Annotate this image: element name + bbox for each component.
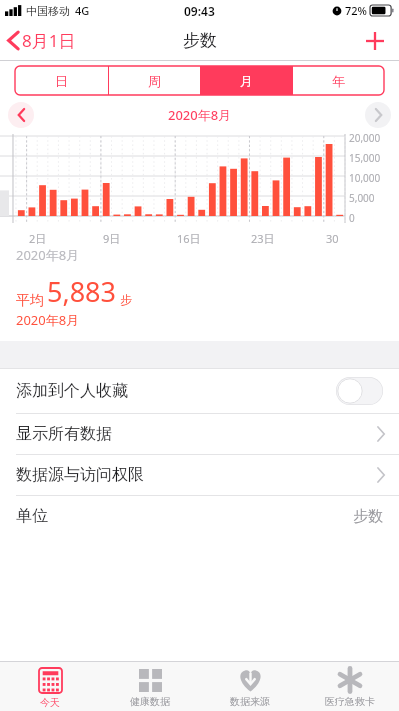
button[interactable]: 月 (200, 66, 292, 95)
staticText: 步数 (183, 30, 217, 51)
button[interactable]: 显示所有数据 (0, 414, 399, 454)
staticText: 平均 (16, 292, 44, 310)
staticText: 2020年8月 (16, 311, 80, 329)
staticText: 数据来源 (230, 695, 270, 708)
staticText: 显示所有数据 (16, 424, 112, 444)
button[interactable]: Add (351, 23, 399, 59)
staticText: 数据源与访问权限 (16, 465, 144, 485)
button[interactable]: 年 (292, 66, 384, 95)
button[interactable]: Next month (365, 102, 391, 128)
staticText: 2020年8月 (16, 246, 80, 264)
staticText: 30 (326, 231, 339, 246)
staticText: 单位 (16, 506, 48, 526)
staticText: 0 (349, 211, 397, 225)
staticText: 添加到个人收藏 (16, 381, 128, 401)
staticText: 20,000 (349, 131, 397, 145)
staticText: 2020年8月 (168, 106, 232, 124)
button[interactable]: 数据源与访问权限 (0, 455, 399, 495)
staticText: 日 (55, 73, 68, 89)
button[interactable]: Previous month (8, 102, 34, 128)
staticText: 今天 (40, 696, 60, 709)
staticText: 月 (240, 73, 253, 89)
staticText: 4G (75, 3, 90, 18)
staticText: 健康数据 (130, 695, 170, 708)
button[interactable]: 日 (15, 66, 108, 95)
button[interactable]: 周 (108, 66, 200, 95)
staticText: 72% (345, 3, 367, 18)
staticText: 10,000 (349, 171, 397, 185)
button[interactable]: 今天 (0, 662, 100, 711)
staticText: 16日 (177, 231, 201, 246)
staticText: 步 (120, 292, 132, 307)
button[interactable]: 单位 (0, 496, 399, 536)
staticText: 9日 (103, 231, 121, 246)
button[interactable]: 8月1日 (0, 25, 84, 56)
button[interactable]: 医疗急救卡 (300, 662, 399, 711)
staticText: 8月1日 (22, 29, 76, 52)
staticText: 中国移动 (26, 4, 70, 18)
button[interactable]: 添加到个人收藏 (0, 369, 399, 413)
staticText: 步数 (353, 507, 383, 526)
button[interactable]: 健康数据 (100, 662, 200, 711)
staticText: 医疗急救卡 (325, 695, 375, 708)
staticText: 周 (148, 73, 161, 89)
staticText: 15,000 (349, 151, 397, 165)
staticText: 5,883 (47, 273, 117, 310)
staticText: 23日 (251, 231, 275, 246)
staticText: 5,000 (349, 191, 397, 205)
staticText: 09:43 (184, 3, 215, 19)
staticText: 2日 (29, 231, 47, 246)
staticText: 年 (332, 73, 345, 89)
button[interactable]: 数据来源 (200, 662, 300, 711)
